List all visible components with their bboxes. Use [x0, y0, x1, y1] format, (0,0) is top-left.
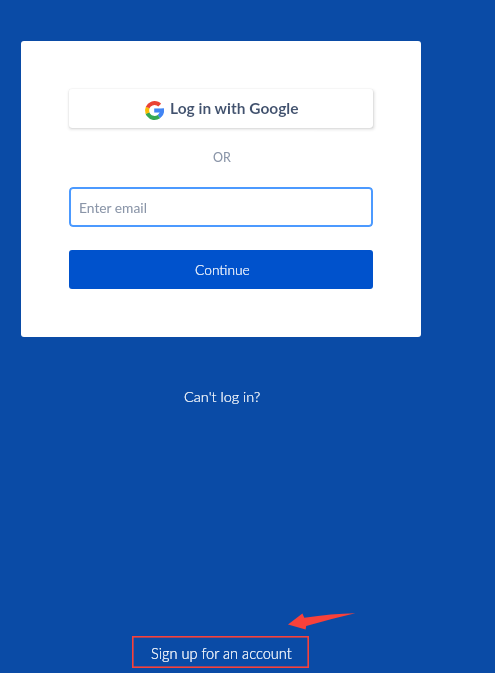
button[interactable]: Sign up for an account	[132, 636, 309, 668]
other: Google	[145, 101, 164, 120]
staticText: Enter email	[79, 199, 147, 216]
button[interactable]: Google	[69, 89, 373, 128]
staticText: Can't log in?	[184, 388, 261, 405]
staticText: Log in with Google	[170, 99, 299, 118]
button[interactable]: Continue	[69, 250, 373, 289]
staticText: Continue	[195, 261, 250, 278]
staticText: Sign up for an account	[151, 645, 292, 663]
button[interactable]: Can't log in?	[180, 385, 265, 408]
button[interactable]: Enter email	[69, 187, 373, 227]
staticText: OR	[213, 150, 231, 165]
